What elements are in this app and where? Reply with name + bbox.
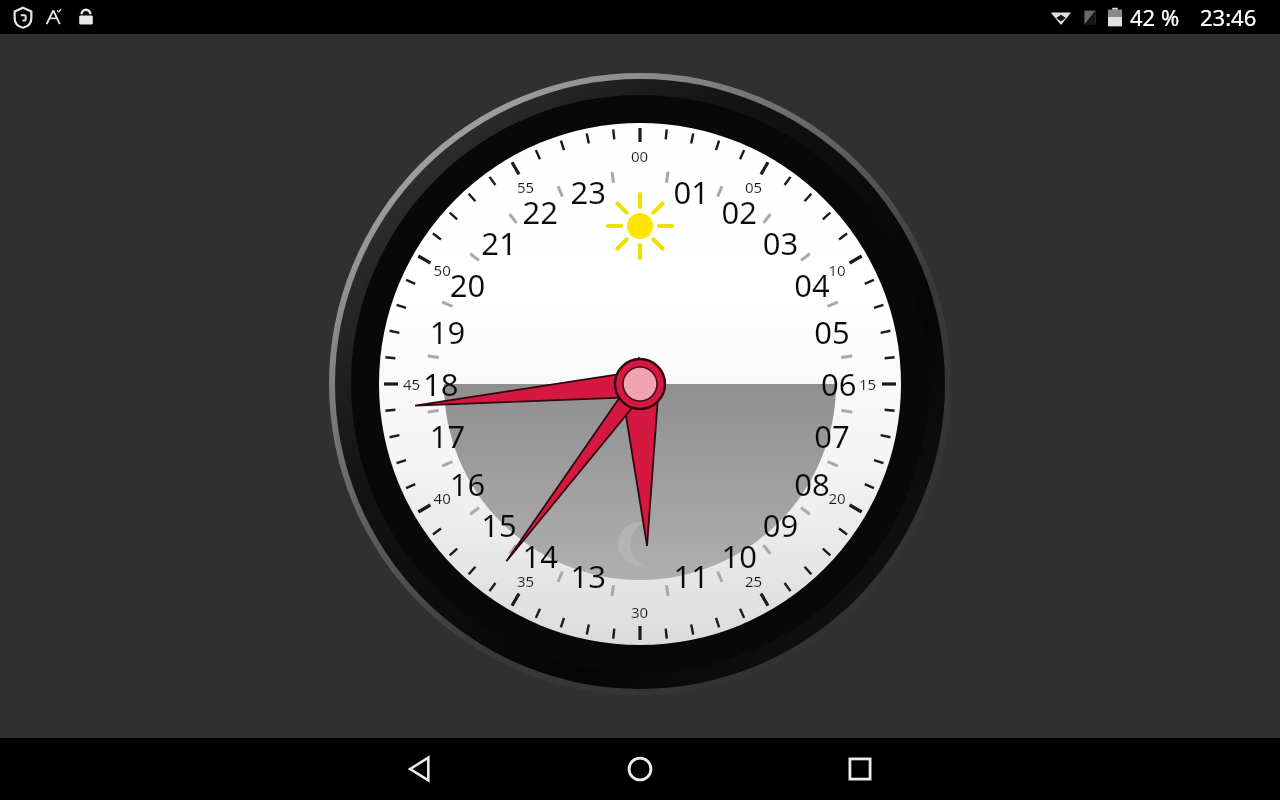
button[interactable]: Recent apps <box>830 739 890 799</box>
button[interactable]: 24 hour analog clock <box>0 34 1280 738</box>
button[interactable]: Back <box>390 739 450 799</box>
button[interactable]: Home <box>610 739 670 799</box>
